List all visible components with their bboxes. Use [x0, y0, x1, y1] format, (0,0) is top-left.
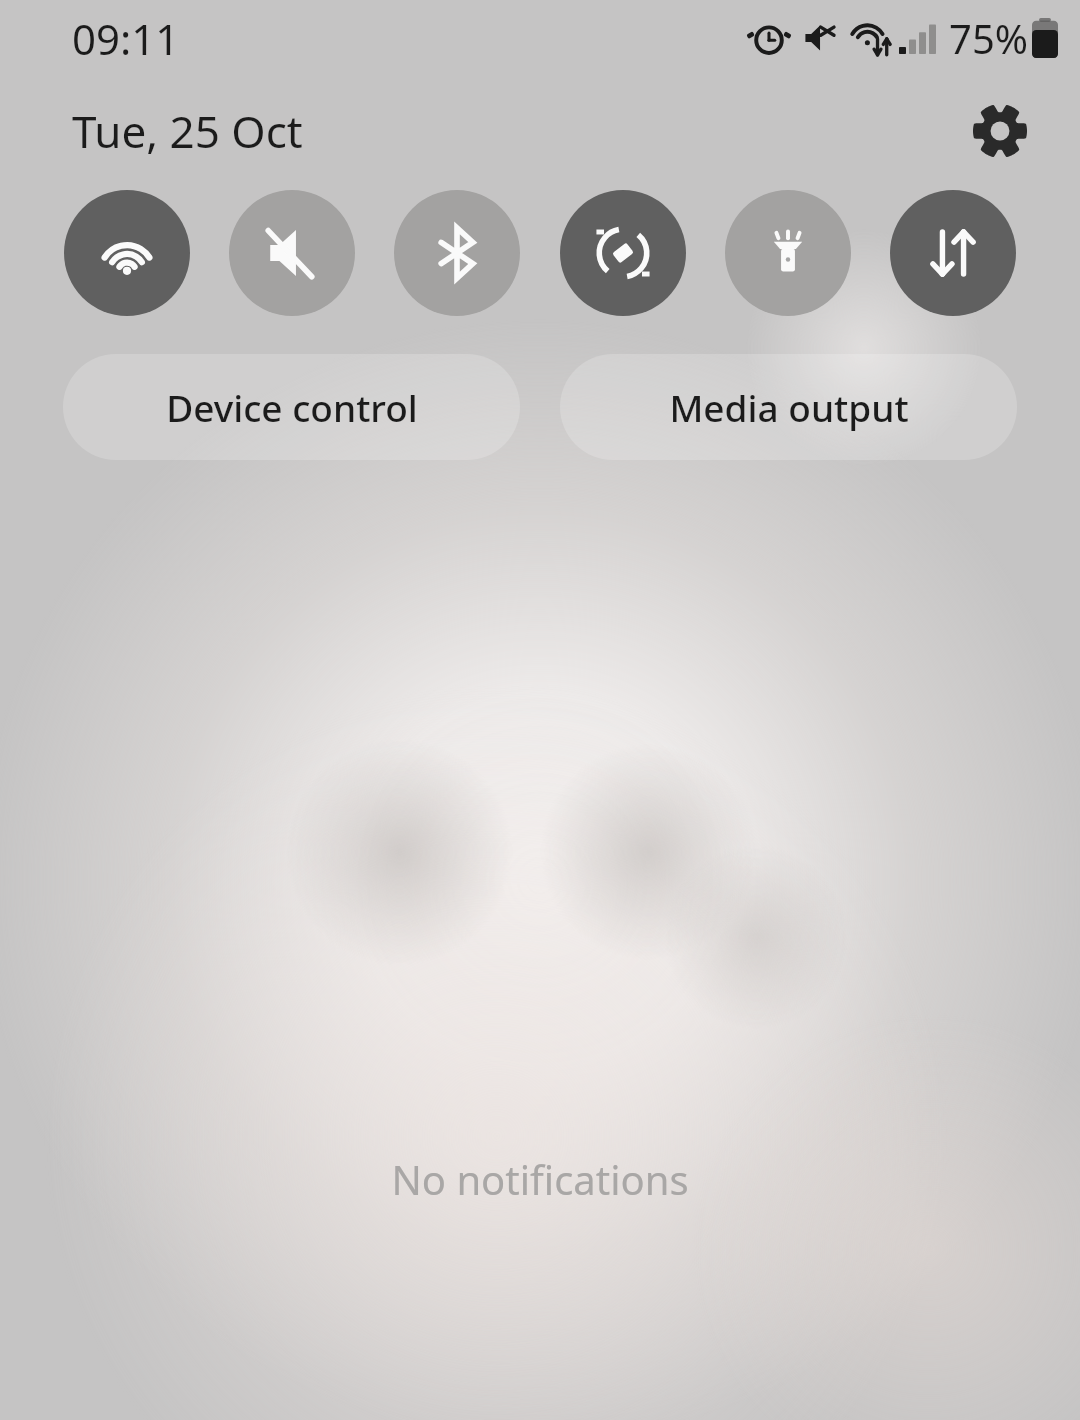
- button[interactable]: Wi-Fi: [64, 190, 190, 316]
- button[interactable]: Mobile data: [890, 190, 1016, 316]
- staticText: No notifications: [0, 1152, 1080, 1206]
- button[interactable]: Device control: [63, 354, 520, 460]
- button[interactable]: Flashlight: [725, 190, 851, 316]
- staticText: 09:11: [72, 10, 180, 67]
- button[interactable]: Auto rotate: [560, 190, 686, 316]
- button[interactable]: Sound off: [229, 190, 355, 316]
- button[interactable]: Settings: [960, 91, 1040, 171]
- staticText: Tue, 25 Oct: [72, 101, 303, 161]
- staticText: 75%: [949, 11, 1028, 65]
- staticText: Media output: [669, 382, 909, 432]
- button[interactable]: Media output: [560, 354, 1017, 460]
- button[interactable]: Bluetooth: [394, 190, 520, 316]
- staticText: Device control: [166, 382, 418, 432]
